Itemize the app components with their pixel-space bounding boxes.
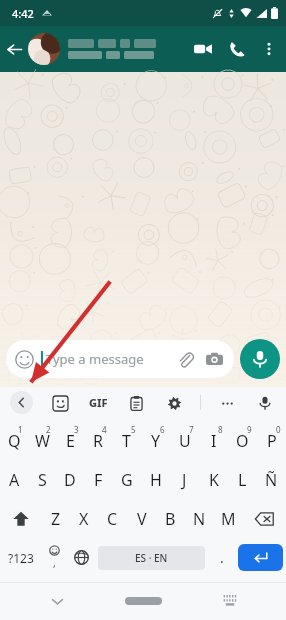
button[interactable]: Switch keyboard [212,583,248,619]
staticText: M [221,508,236,530]
button[interactable]: Backspace [243,499,286,538]
button[interactable]: H [141,460,170,499]
staticText: 4 [102,424,107,435]
staticText: N [193,508,206,530]
staticText: G [121,469,133,491]
staticText: C [107,508,118,530]
button[interactable]: F [84,460,112,499]
button[interactable]: . [208,538,235,577]
button[interactable]: Contact photo [28,33,60,65]
staticText: ?123 [8,550,34,566]
staticText: Y [151,430,161,452]
button[interactable]: O [228,421,257,460]
button[interactable]: Back [0,26,28,72]
button[interactable]: Home [113,586,173,616]
button[interactable]: V [127,499,156,538]
staticText: 5 [131,424,136,435]
staticText: , [53,556,56,570]
button[interactable]: Z [42,499,70,538]
staticText: 2 [46,424,51,435]
button[interactable]: U [170,421,199,460]
staticText: U [179,430,191,452]
staticText: P [267,430,277,452]
button[interactable]: I [199,421,228,460]
button[interactable]: W [28,421,56,460]
staticText: 3 [74,424,79,435]
staticText: Ñ [265,469,278,491]
staticText: 0 [276,424,281,435]
button[interactable]: Clipboard [124,391,148,415]
staticText: X [79,508,89,530]
button[interactable]: More [215,391,239,415]
staticText: 7 [189,424,194,435]
button[interactable]: C [98,499,127,538]
button[interactable]: Video call [186,32,220,66]
button[interactable]: X [70,499,98,538]
button[interactable]: G [112,460,141,499]
button[interactable]: A [0,460,28,499]
staticText: H [150,469,162,491]
button[interactable]: Voice call [220,32,254,66]
staticText: Z [51,508,61,530]
button[interactable]: Y [141,421,170,460]
staticText: 6 [160,424,165,435]
staticText: . [220,548,224,567]
button[interactable]: Emoji [41,538,68,577]
staticText: Type a message [46,350,144,368]
button[interactable]: B [156,499,185,538]
staticText: J [182,469,187,491]
staticText: 9 [247,424,252,435]
staticText: O [236,430,249,452]
button[interactable]: Settings [162,391,186,415]
staticText: K [209,469,219,491]
staticText: ES · EN [135,551,168,565]
button[interactable]: D [56,460,84,499]
staticText: Q [8,430,21,452]
staticText: E [66,430,75,452]
button[interactable]: M [214,499,243,538]
staticText: F [94,469,103,491]
button[interactable]: Hide keyboard [39,583,75,619]
staticText: A [9,469,20,491]
button[interactable]: P [257,421,286,460]
button[interactable]: E [56,421,84,460]
button[interactable]: Enter [238,544,283,571]
staticText: V [137,508,147,530]
staticText: T [122,430,131,452]
button[interactable]: K [199,460,228,499]
button[interactable]: N [185,499,214,538]
staticText: B [165,508,176,530]
staticText: 8 [218,424,223,435]
button[interactable]: GIF [87,393,110,412]
staticText: D [64,469,76,491]
button[interactable]: Attach [174,348,196,370]
button[interactable]: Change language [68,538,95,577]
button[interactable]: Voice input [253,391,277,415]
button[interactable]: J [170,460,199,499]
button[interactable]: ES · EN [98,546,205,570]
staticText: I [211,430,217,452]
button[interactable]: Type a message [6,340,234,378]
button[interactable]: Camera [203,348,225,370]
staticText: GIF [89,395,108,410]
button[interactable]: More options [254,34,284,64]
button[interactable]: Shift [0,499,42,538]
staticText: L [238,469,247,491]
button[interactable]: S [28,460,56,499]
staticText: S [38,469,47,491]
staticText: 4:42 [12,6,34,21]
button[interactable]: Ñ [257,460,286,499]
staticText: 1 [18,424,23,435]
staticText: R [93,430,103,452]
button[interactable]: Back [10,391,33,414]
button[interactable]: T [112,421,141,460]
button[interactable]: L [228,460,257,499]
button[interactable]: R [84,421,112,460]
staticText: W [35,430,50,452]
button[interactable]: Stickers [48,391,72,415]
button[interactable]: Q [0,421,28,460]
button[interactable]: Record voice message [240,339,280,379]
button[interactable]: ?123 [0,538,41,577]
